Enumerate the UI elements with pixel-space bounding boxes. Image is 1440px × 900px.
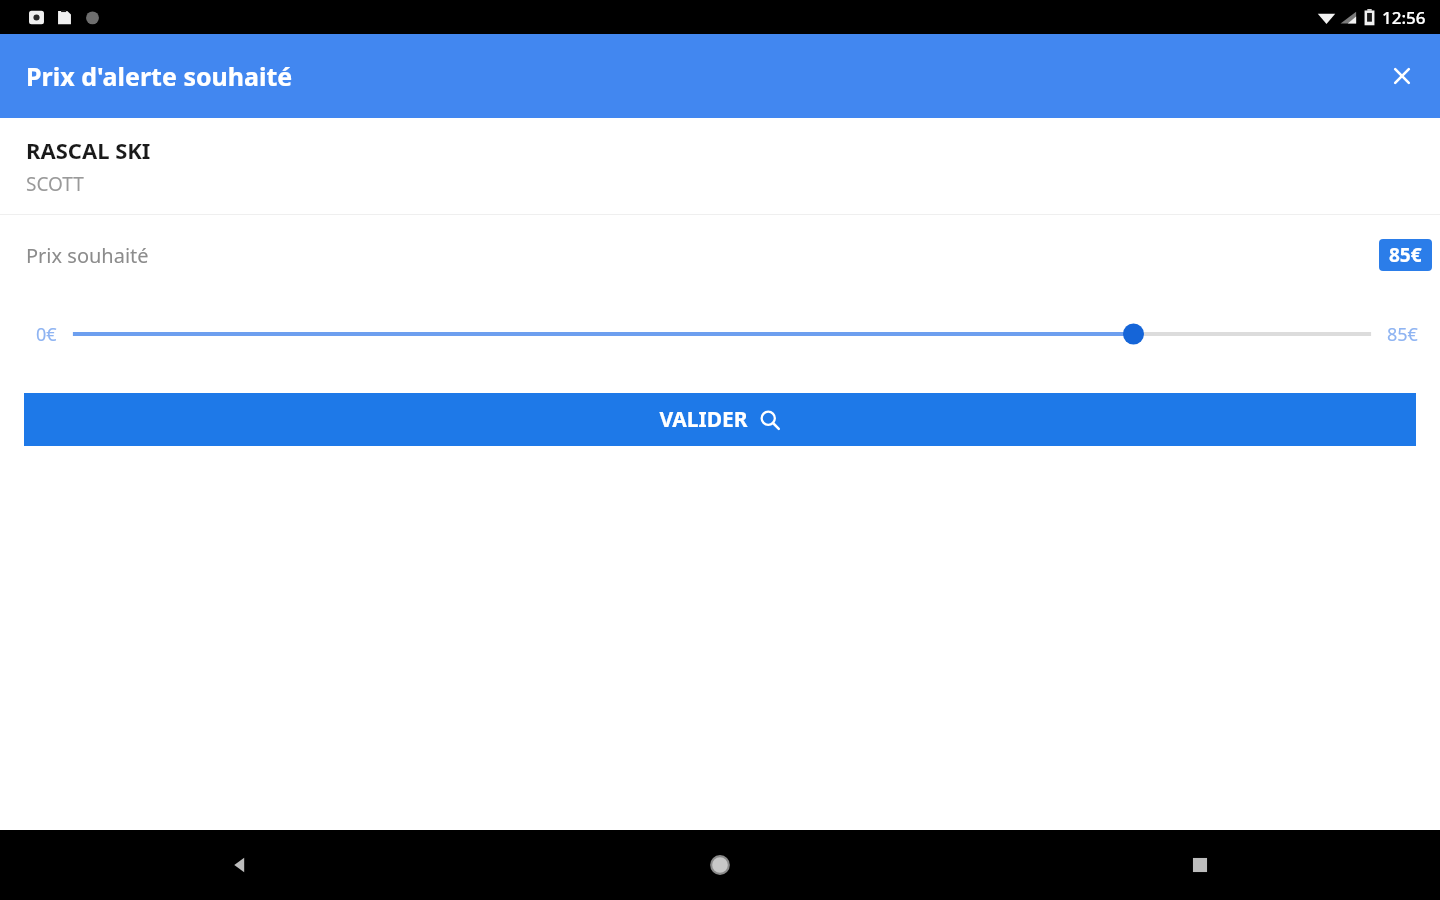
staticText: Prix d'alerte souhaité [26, 59, 293, 93]
staticText: Prix souhaité [26, 242, 149, 269]
button[interactable]: Retour [0, 830, 480, 900]
staticText: 0€ [36, 322, 57, 347]
staticText: 85€ [1387, 322, 1418, 347]
staticText: VALIDER [659, 405, 748, 434]
staticText: 85€ [1389, 242, 1422, 268]
button[interactable]: 85€ [1379, 239, 1432, 271]
button[interactable]: Applications récentes [960, 830, 1440, 900]
button[interactable]: VALIDER [24, 393, 1416, 446]
button[interactable]: Accueil [480, 830, 960, 900]
staticText: RASCAL SKI [26, 135, 151, 165]
button[interactable]: RASCAL SKI [0, 118, 1440, 214]
button[interactable]: Fermer [1378, 52, 1426, 100]
button[interactable]: Curseur de prix [75, 314, 1369, 354]
staticText: 12:56 [1382, 6, 1426, 29]
staticText: SCOTT [26, 171, 84, 197]
